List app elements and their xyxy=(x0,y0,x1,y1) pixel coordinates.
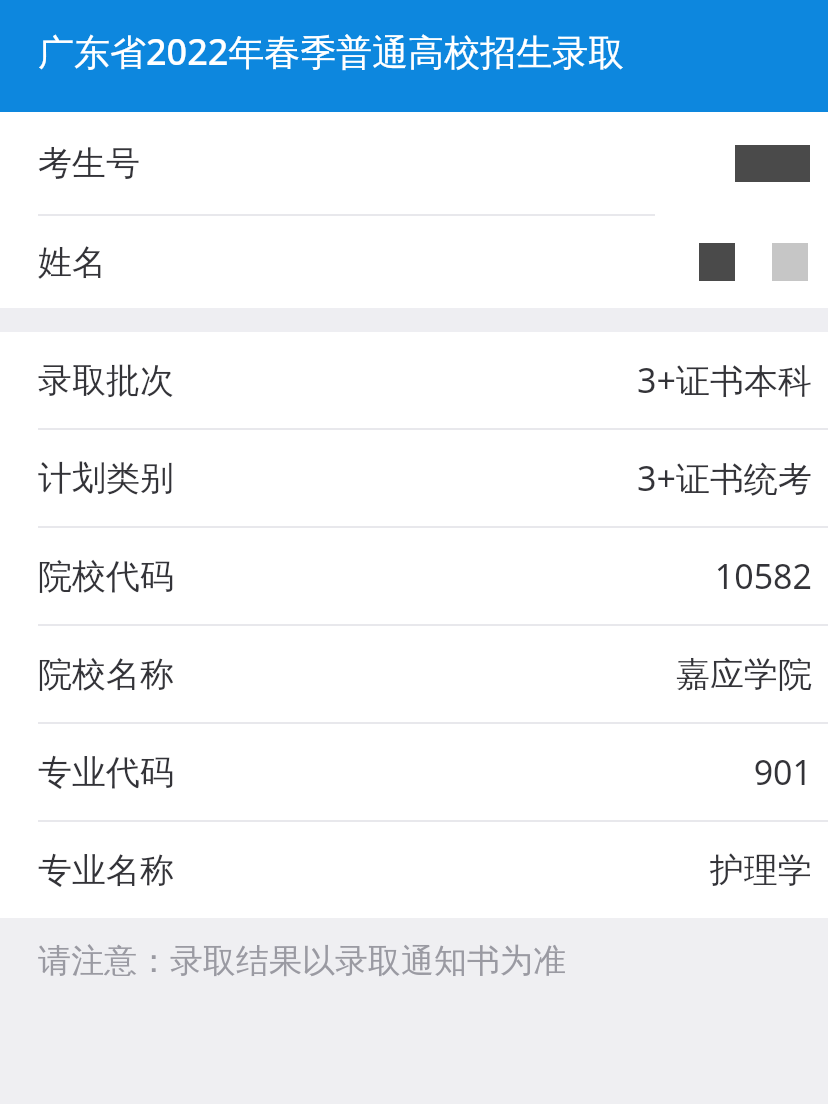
button[interactable]: 院校代码 xyxy=(0,528,828,624)
button[interactable]: 专业名称 xyxy=(0,822,828,918)
staticText: 护理学 xyxy=(710,849,812,892)
staticText: 院校名称 xyxy=(38,653,174,696)
button[interactable]: 专业代码 xyxy=(0,724,828,820)
staticText: 录取批次 xyxy=(38,359,174,402)
button[interactable]: 录取批次 xyxy=(0,332,828,428)
button[interactable]: 姓名 xyxy=(0,216,828,308)
staticText: 请注意：录取结果以录取通知书为准 xyxy=(38,940,566,982)
button[interactable]: 计划类别 xyxy=(0,430,828,526)
staticText: 广东省2022年春季普通高校招生录取 xyxy=(38,27,625,76)
staticText: 考生号 xyxy=(38,142,140,185)
staticText: 3+证书统考 xyxy=(637,455,812,501)
staticText: 10582 xyxy=(714,553,812,599)
staticText: 姓名 xyxy=(38,241,106,284)
staticText: 3+证书本科 xyxy=(637,357,812,403)
button[interactable]: 院校名称 xyxy=(0,626,828,722)
staticText: 计划类别 xyxy=(38,457,174,500)
staticText: 901 xyxy=(753,749,812,795)
staticText: 专业名称 xyxy=(38,849,174,892)
staticText: 专业代码 xyxy=(38,751,174,794)
staticText: 嘉应学院 xyxy=(676,653,812,696)
button[interactable]: 考生号 xyxy=(0,112,828,214)
staticText: 院校代码 xyxy=(38,555,174,598)
